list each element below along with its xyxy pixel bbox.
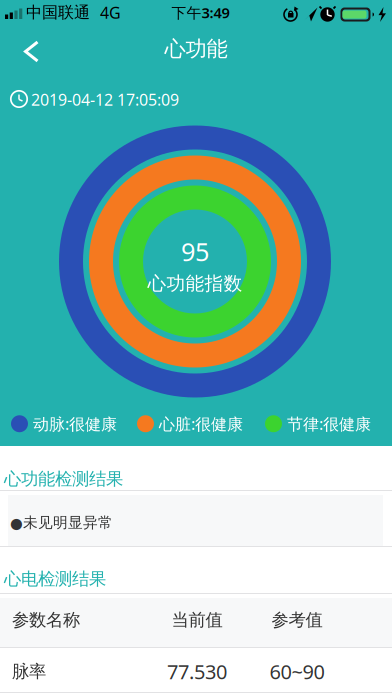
staticText: 当前值 [171,609,222,631]
staticText: 77.530 [167,658,227,685]
staticText: 95 [181,235,209,268]
staticText: 下午3:49 [171,3,229,22]
staticText: 心功能 [164,36,227,62]
staticText: 参考值 [271,609,322,631]
button[interactable]: Back [0,32,39,70]
staticText: 4G [100,2,121,23]
staticText: 心电检测结果 [4,568,106,590]
staticText: 60~90 [269,658,324,685]
staticText: 节律:很健康 [287,413,371,434]
staticText: 脉率 [12,661,46,682]
staticText: 中国联通 [26,3,90,22]
staticText: 心功能指数 [147,272,242,295]
staticText: 参数名称 [12,609,80,631]
staticText: 心功能检测结果 [4,468,123,490]
staticText: 2019-04-12 17:05:09 [31,89,179,110]
staticText: ●未见明显异常 [10,513,113,531]
staticText: 动脉:很健康 [33,413,117,434]
staticText: 心脏:很健康 [159,413,243,434]
